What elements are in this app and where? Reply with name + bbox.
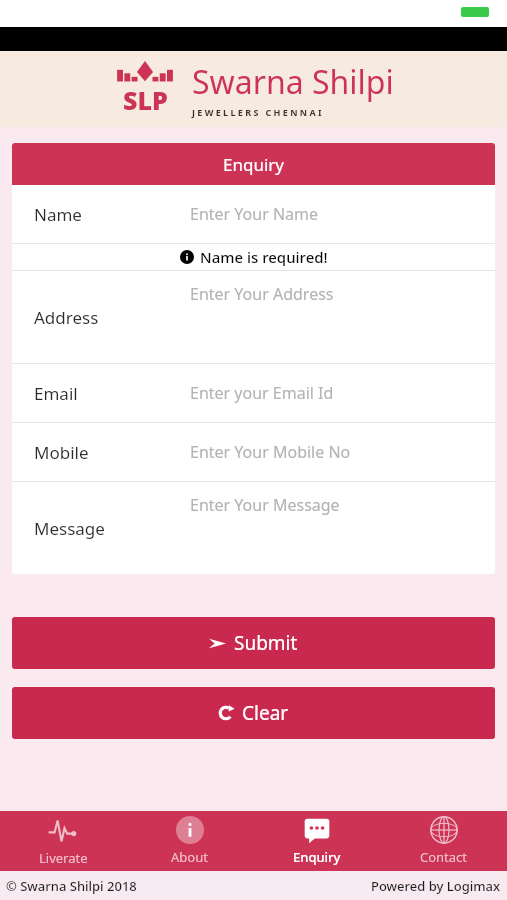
button[interactable]: Clear [12, 687, 495, 739]
button[interactable]: Address [12, 271, 495, 363]
staticText: Enquiry [223, 153, 284, 176]
button[interactable]: Email [12, 364, 495, 422]
staticText: Liverate [39, 849, 88, 867]
staticText: About [171, 848, 208, 866]
staticText: Name [34, 203, 82, 226]
staticText: Swarna Shilpi [192, 60, 394, 104]
staticText: Enquiry [293, 848, 341, 866]
button[interactable]: Message [12, 482, 495, 574]
staticText: Contact [420, 848, 468, 866]
button[interactable]: Submit [12, 617, 495, 669]
staticText: © Swarna Shilpi 2018 [6, 877, 137, 895]
staticText: Email [34, 382, 78, 405]
staticText: Address [34, 306, 99, 329]
button[interactable]: Name [12, 185, 495, 243]
staticText: Powered by Logimax [371, 877, 501, 895]
staticText: SLP [123, 83, 168, 117]
staticText: Clear [242, 700, 289, 726]
button[interactable]: About [126, 816, 253, 866]
staticText: J E W E L L E R S C H E N N A I [192, 106, 322, 118]
button[interactable]: Enquiry [253, 816, 380, 866]
button[interactable]: Mobile [12, 423, 495, 481]
staticText: Message [34, 517, 105, 540]
staticText: Enter Your Mobile No [190, 441, 351, 463]
staticText: Enter Your Address [190, 283, 334, 305]
button[interactable]: Contact [380, 816, 507, 866]
staticText: Name is required! [200, 247, 328, 267]
staticText: Mobile [34, 441, 89, 464]
staticText: Submit [234, 630, 298, 656]
staticText: Enter Your Message [190, 494, 340, 516]
button[interactable]: Liverate [0, 815, 126, 867]
staticText: Enter your Email Id [190, 382, 334, 404]
staticText: Enter Your Name [190, 203, 319, 225]
